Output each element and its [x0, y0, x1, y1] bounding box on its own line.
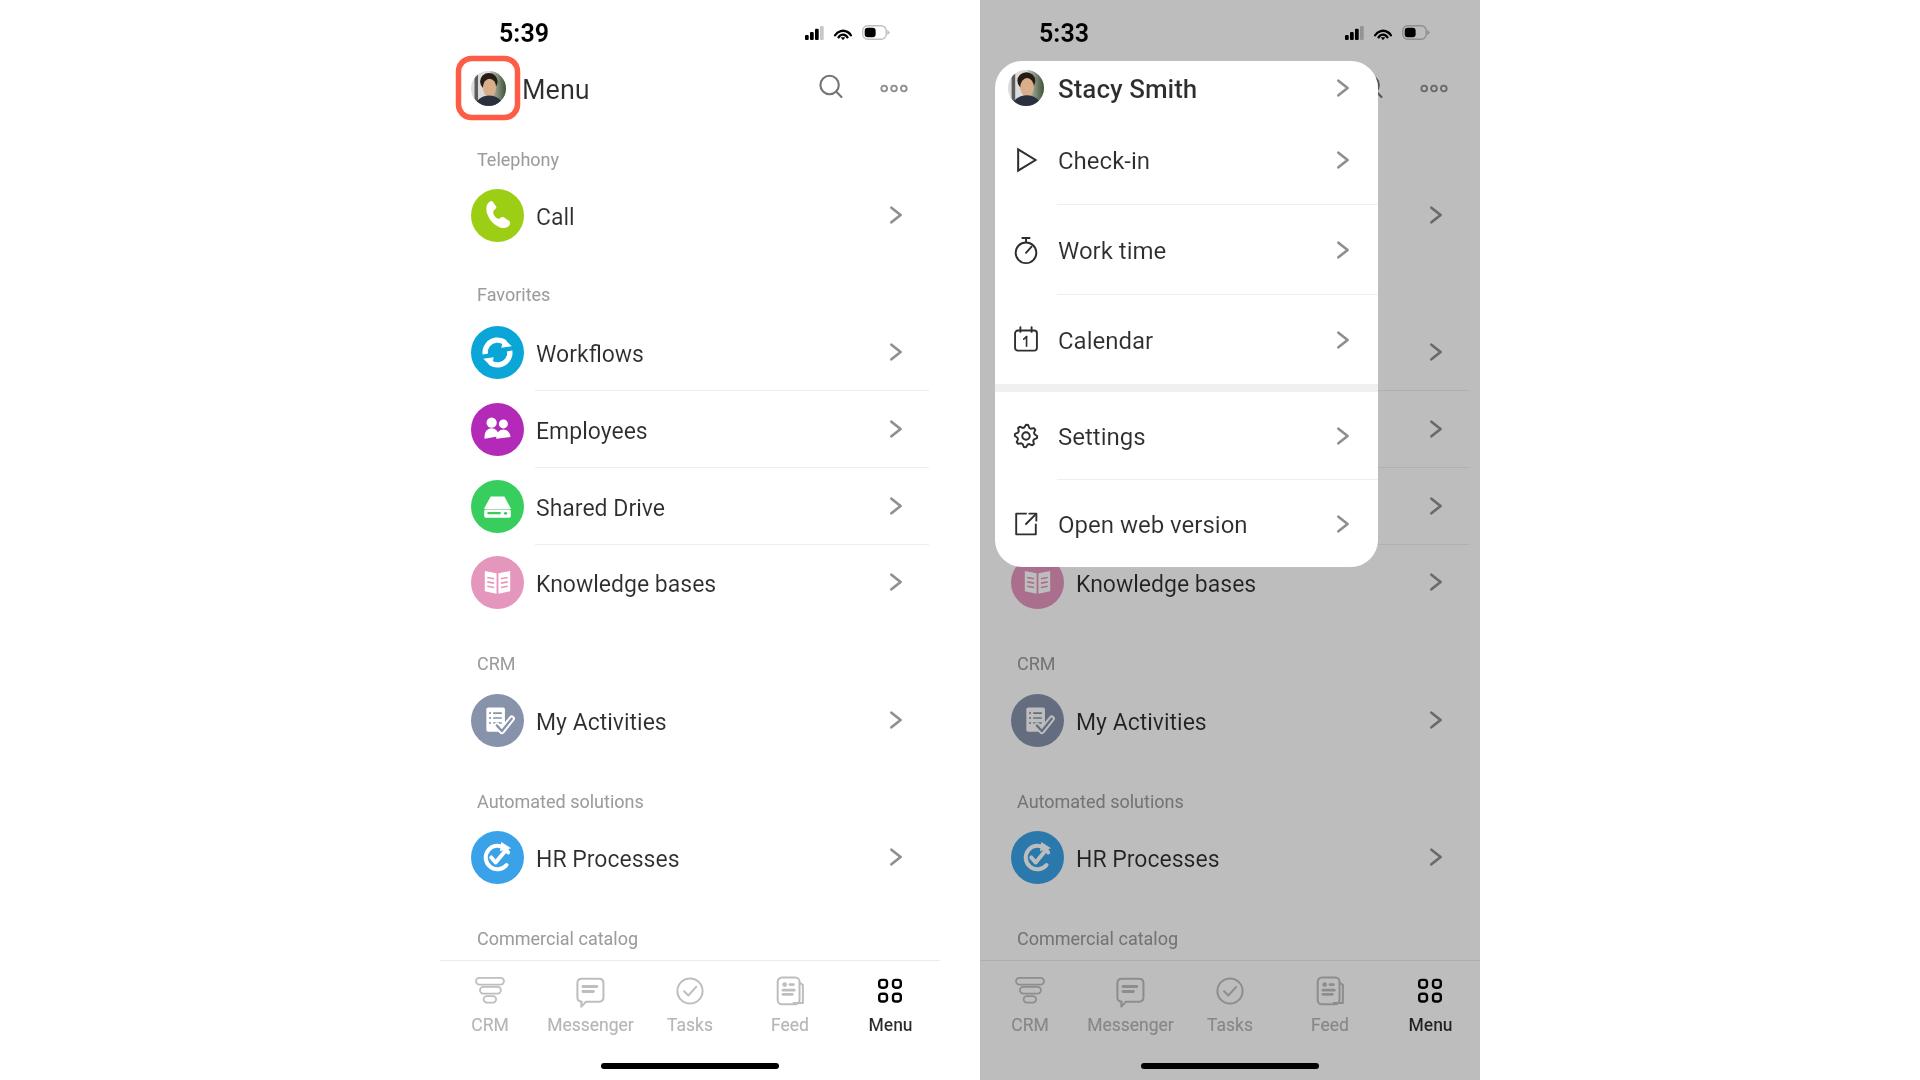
staticText: Telephony: [1017, 149, 1100, 170]
staticText: 5:39: [499, 19, 550, 48]
staticText: Automated solutions: [477, 791, 644, 812]
button[interactable]: Feed: [1280, 977, 1380, 1039]
button[interactable]: Menu: [840, 977, 940, 1039]
staticText: HR Processes: [1076, 846, 1220, 873]
staticText: My Activities: [1076, 709, 1207, 736]
button[interactable]: Messenger: [540, 977, 640, 1039]
button[interactable]: Tasks: [640, 977, 740, 1039]
staticText: Shared Drive: [1076, 495, 1205, 522]
button[interactable]: Knowledge bases: [980, 543, 1480, 621]
button[interactable]: Calendar: [995, 295, 1378, 384]
button[interactable]: My Activities: [980, 681, 1480, 759]
staticText: CRM: [471, 1015, 509, 1036]
staticText: Favorites: [477, 284, 551, 305]
button[interactable]: HR Processes: [440, 818, 940, 896]
button[interactable]: Open web version: [995, 480, 1378, 567]
button[interactable]: Work time: [995, 205, 1378, 295]
button[interactable]: More options: [871, 65, 917, 111]
staticText: My Activities: [536, 709, 667, 736]
button[interactable]: Menu: [522, 74, 590, 106]
button[interactable]: Stacy Smith: [995, 61, 1378, 115]
button[interactable]: Search: [1349, 65, 1395, 111]
button[interactable]: Profile: [996, 56, 1060, 120]
staticText: Tasks: [667, 1015, 713, 1036]
button[interactable]: Shared Drive: [980, 467, 1480, 545]
staticText: Feed: [771, 1015, 809, 1036]
staticText: Commercial catalog: [477, 928, 639, 949]
staticText: Calendar: [1058, 327, 1154, 355]
button[interactable]: Messenger: [1080, 977, 1180, 1039]
staticText: Menu: [1408, 1015, 1453, 1036]
button[interactable]: My Activities: [440, 681, 940, 759]
staticText: Feed: [1311, 1015, 1349, 1036]
staticText: Employees: [1076, 418, 1188, 445]
button[interactable]: CRM: [980, 977, 1080, 1039]
staticText: Messenger: [1087, 1015, 1174, 1036]
staticText: Call: [1076, 204, 1115, 231]
button[interactable]: Employees: [980, 390, 1480, 468]
button[interactable]: Settings: [995, 392, 1378, 480]
button[interactable]: Profile: [456, 56, 520, 120]
button[interactable]: Feed: [740, 977, 840, 1039]
button[interactable]: HR Processes: [980, 818, 1480, 896]
button[interactable]: Workflows: [440, 313, 940, 391]
button[interactable]: Menu: [1062, 74, 1130, 106]
button[interactable]: More options: [1411, 65, 1457, 111]
staticText: Knowledge bases: [536, 571, 717, 598]
button[interactable]: Call: [440, 176, 940, 254]
button[interactable]: Check-in: [995, 115, 1378, 205]
button[interactable]: Knowledge bases: [440, 543, 940, 621]
button[interactable]: Call: [980, 176, 1480, 254]
button[interactable]: Employees: [440, 390, 940, 468]
staticText: Stacy Smith: [1058, 74, 1198, 104]
button[interactable]: Tasks: [1180, 977, 1280, 1039]
staticText: Open web version: [1058, 511, 1248, 539]
staticText: Work time: [1058, 237, 1167, 265]
staticText: CRM: [477, 653, 516, 674]
button[interactable]: Workflows: [980, 313, 1480, 391]
staticText: Employees: [536, 418, 648, 445]
staticText: 5:33: [1039, 19, 1090, 48]
staticText: Automated solutions: [1017, 791, 1184, 812]
button[interactable]: Menu: [1380, 977, 1480, 1039]
staticText: Workflows: [536, 341, 644, 368]
button[interactable]: CRM: [440, 977, 540, 1039]
staticText: Settings: [1058, 423, 1146, 451]
staticText: Tasks: [1207, 1015, 1253, 1036]
staticText: CRM: [1011, 1015, 1049, 1036]
staticText: Knowledge bases: [1076, 571, 1257, 598]
staticText: Shared Drive: [536, 495, 665, 522]
staticText: HR Processes: [536, 846, 680, 873]
staticText: Check-in: [1058, 147, 1151, 175]
staticText: CRM: [1017, 653, 1056, 674]
button[interactable]: Shared Drive: [440, 467, 940, 545]
button[interactable]: Search: [809, 65, 855, 111]
staticText: Menu: [868, 1015, 913, 1036]
staticText: Commercial catalog: [1017, 928, 1179, 949]
staticText: Messenger: [547, 1015, 634, 1036]
staticText: Workflows: [1076, 341, 1184, 368]
staticText: Call: [536, 204, 575, 231]
staticText: Telephony: [477, 149, 560, 170]
